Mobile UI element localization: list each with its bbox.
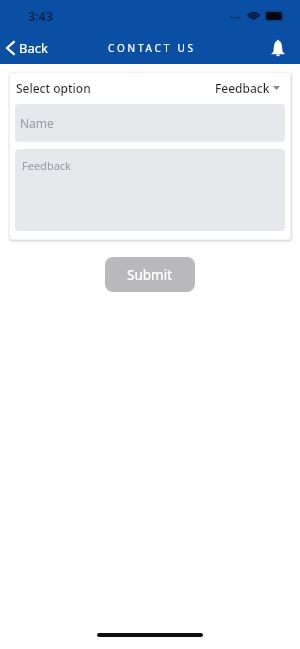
staticText: Submit bbox=[127, 266, 173, 284]
button[interactable]: Back bbox=[0, 34, 56, 62]
staticText: Feedback bbox=[215, 80, 270, 96]
staticText: Select option bbox=[16, 80, 91, 96]
staticText: CONTACT US bbox=[108, 41, 196, 55]
button[interactable]: Feedback bbox=[215, 80, 280, 96]
button[interactable]: Submit bbox=[105, 257, 195, 292]
button[interactable]: Feedback bbox=[15, 149, 285, 231]
staticText: Feedback bbox=[22, 158, 71, 173]
button[interactable]: Name bbox=[15, 104, 285, 142]
staticText: Name bbox=[20, 115, 54, 131]
staticText: Back bbox=[19, 39, 48, 57]
staticText: 3:43 bbox=[28, 8, 53, 25]
button[interactable]: Notifications bbox=[266, 36, 290, 60]
